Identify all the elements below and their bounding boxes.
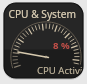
button[interactable]: CPU and System activity gauge complicati…: [0, 0, 87, 84]
